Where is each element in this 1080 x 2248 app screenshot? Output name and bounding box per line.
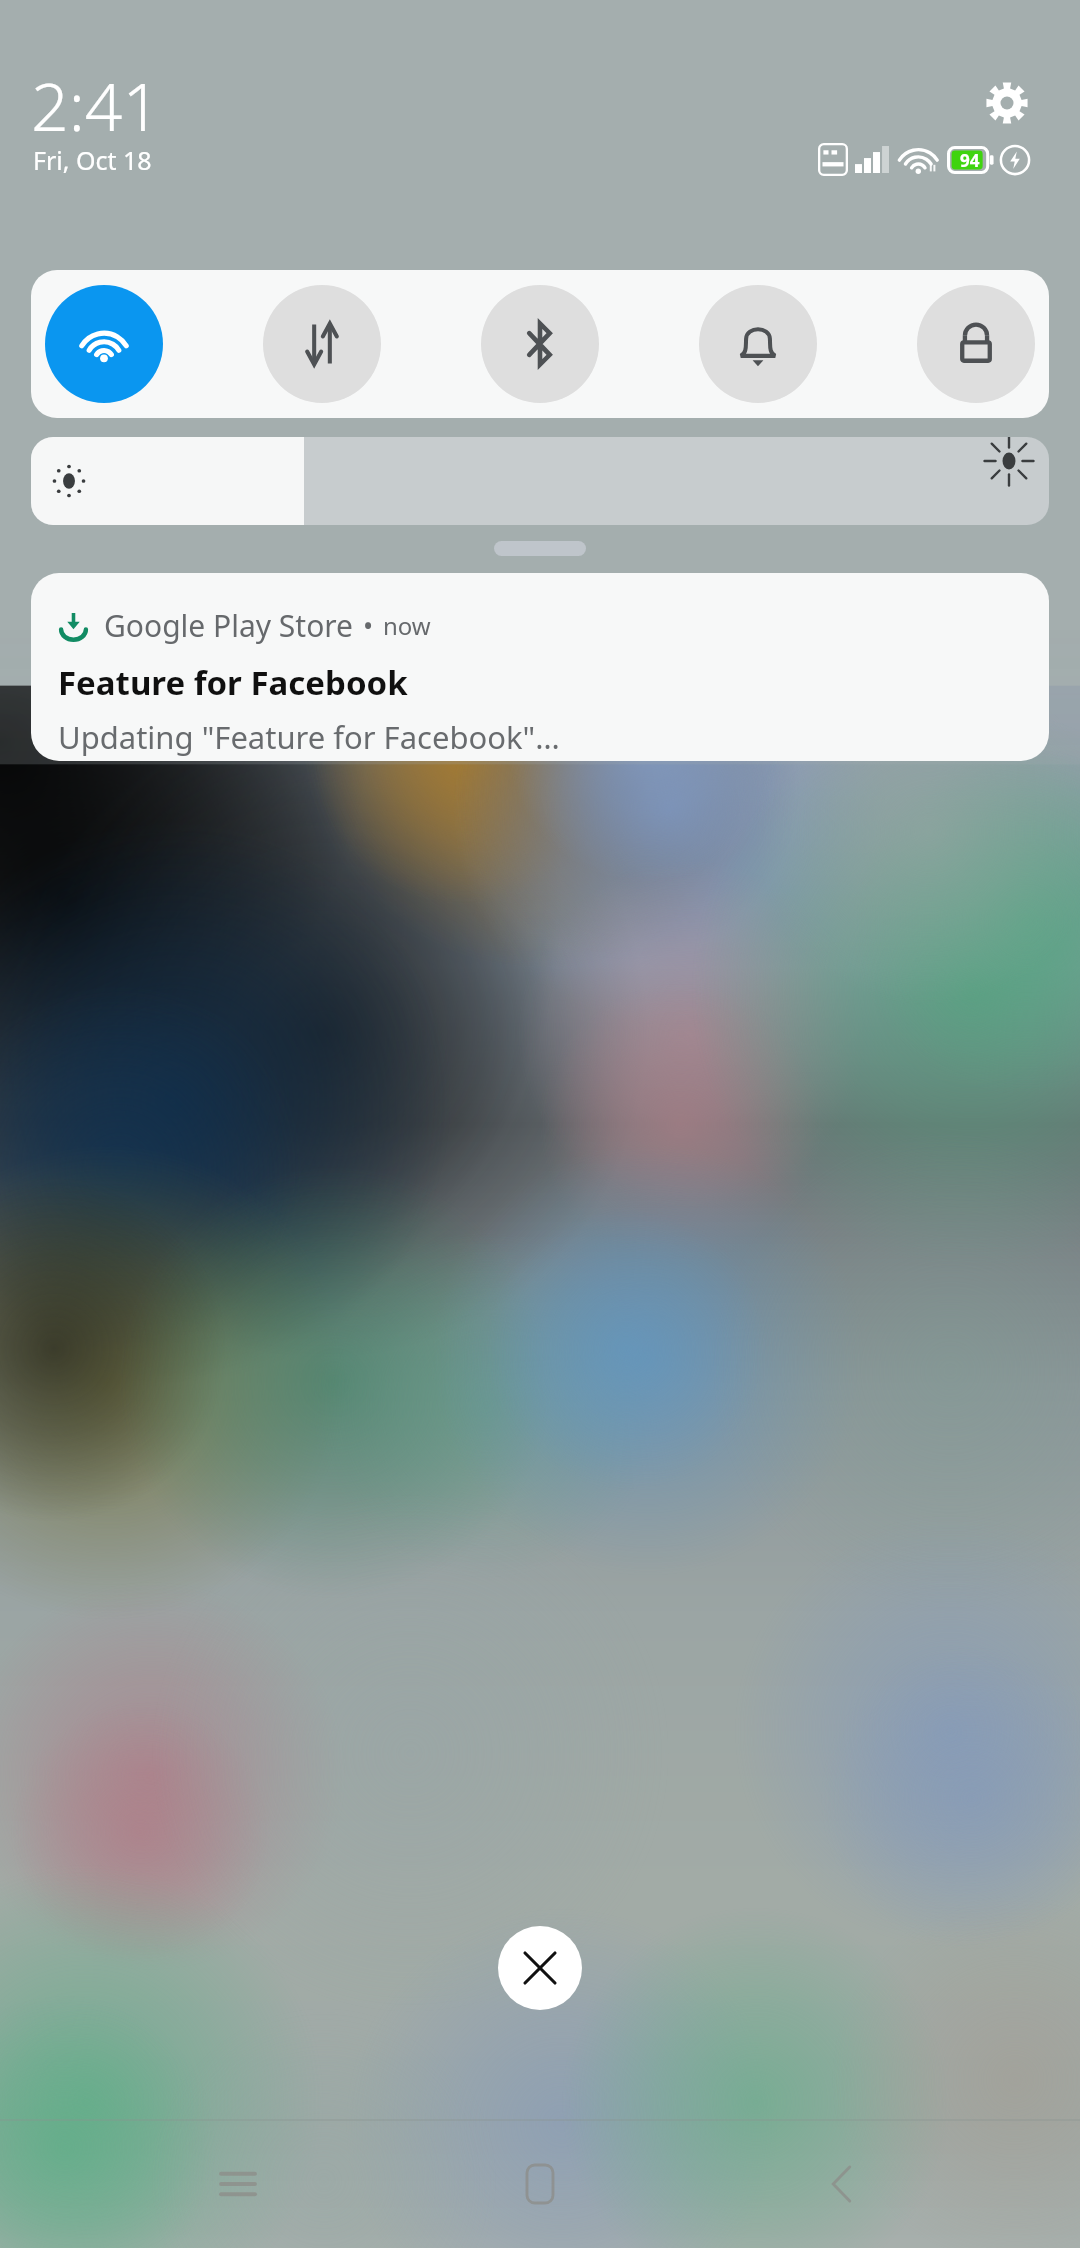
button[interactable]: Mobile data	[263, 285, 381, 403]
staticText: now	[383, 609, 431, 642]
button[interactable]: Bluetooth	[481, 285, 599, 403]
staticText: Updating "Feature for Facebook"…	[58, 716, 560, 758]
button[interactable]: Recents	[183, 2129, 293, 2239]
button[interactable]: Google Play Store	[31, 573, 1049, 761]
staticText: •	[363, 607, 374, 644]
staticText: Google Play Store	[104, 605, 354, 646]
button[interactable]: Brightness	[31, 437, 1049, 525]
button[interactable]: Back	[787, 2129, 897, 2239]
staticText: 94	[960, 149, 980, 172]
button[interactable]: Lock	[917, 285, 1035, 403]
button[interactable]: Sound mode	[699, 285, 817, 403]
staticText: Fri, Oct 18	[33, 143, 152, 177]
button[interactable]: Clear all notifications	[498, 1926, 582, 2010]
button[interactable]	[494, 541, 586, 556]
button[interactable]: Wi-Fi	[45, 285, 163, 403]
staticText: Feature for Facebook	[58, 660, 408, 705]
button[interactable]: Home	[485, 2129, 595, 2239]
staticText: 2:41	[31, 60, 161, 150]
button[interactable]: Settings	[982, 78, 1032, 128]
